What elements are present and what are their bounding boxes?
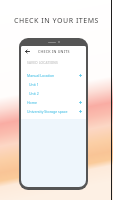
staticText: Unit 2	[29, 91, 39, 96]
staticText: CHECK IN YOUR ITEMS	[0, 16, 113, 26]
button[interactable]: Home	[21, 98, 86, 107]
button[interactable]: Back	[24, 48, 31, 55]
staticText: Manual Location	[27, 73, 55, 78]
button[interactable]: Unit 2	[21, 89, 86, 98]
button[interactable]: University Storage space	[21, 107, 86, 116]
staticText: University Storage space	[27, 109, 68, 114]
staticText: SAVED LOCATIONS	[27, 61, 58, 65]
staticText: Unit 1	[29, 82, 39, 87]
button[interactable]: Unit 1	[21, 80, 86, 89]
staticText: Home	[27, 100, 37, 105]
staticText: CHECK IN UNITS	[38, 49, 70, 54]
button[interactable]: Manual Location	[21, 71, 86, 80]
